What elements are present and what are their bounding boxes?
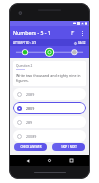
staticText: SKIP / NEXT [61,145,77,149]
staticText: 2089 [26,92,35,97]
staticText: CHECK ANSWER [20,145,42,149]
staticText: Numbers - 5 - 1 [13,29,51,36]
staticText: 04:32 [78,41,86,45]
staticText: Question 2 [16,64,33,68]
staticText: 289 [26,120,33,125]
button[interactable]: CHECK ANSWER [14,143,47,151]
button[interactable]: 20089 [13,130,86,142]
button[interactable]: More options [78,29,86,37]
button[interactable]: Back [23,156,32,165]
button[interactable]: Report question [69,29,77,37]
button[interactable]: SKIP / NEXT [52,143,85,151]
staticText: 2809 [26,106,35,111]
staticText: Write two thousand and eighty nine in fi… [16,73,83,83]
button[interactable]: 289 [13,116,86,128]
staticText: ATTEMPTED : 2/3 [13,41,37,45]
button[interactable]: Recent apps [67,156,76,165]
button[interactable]: 2089 [13,88,86,100]
staticText: 20089 [26,134,37,139]
button[interactable]: Home [45,156,54,165]
button[interactable]: 2809 [13,102,86,114]
